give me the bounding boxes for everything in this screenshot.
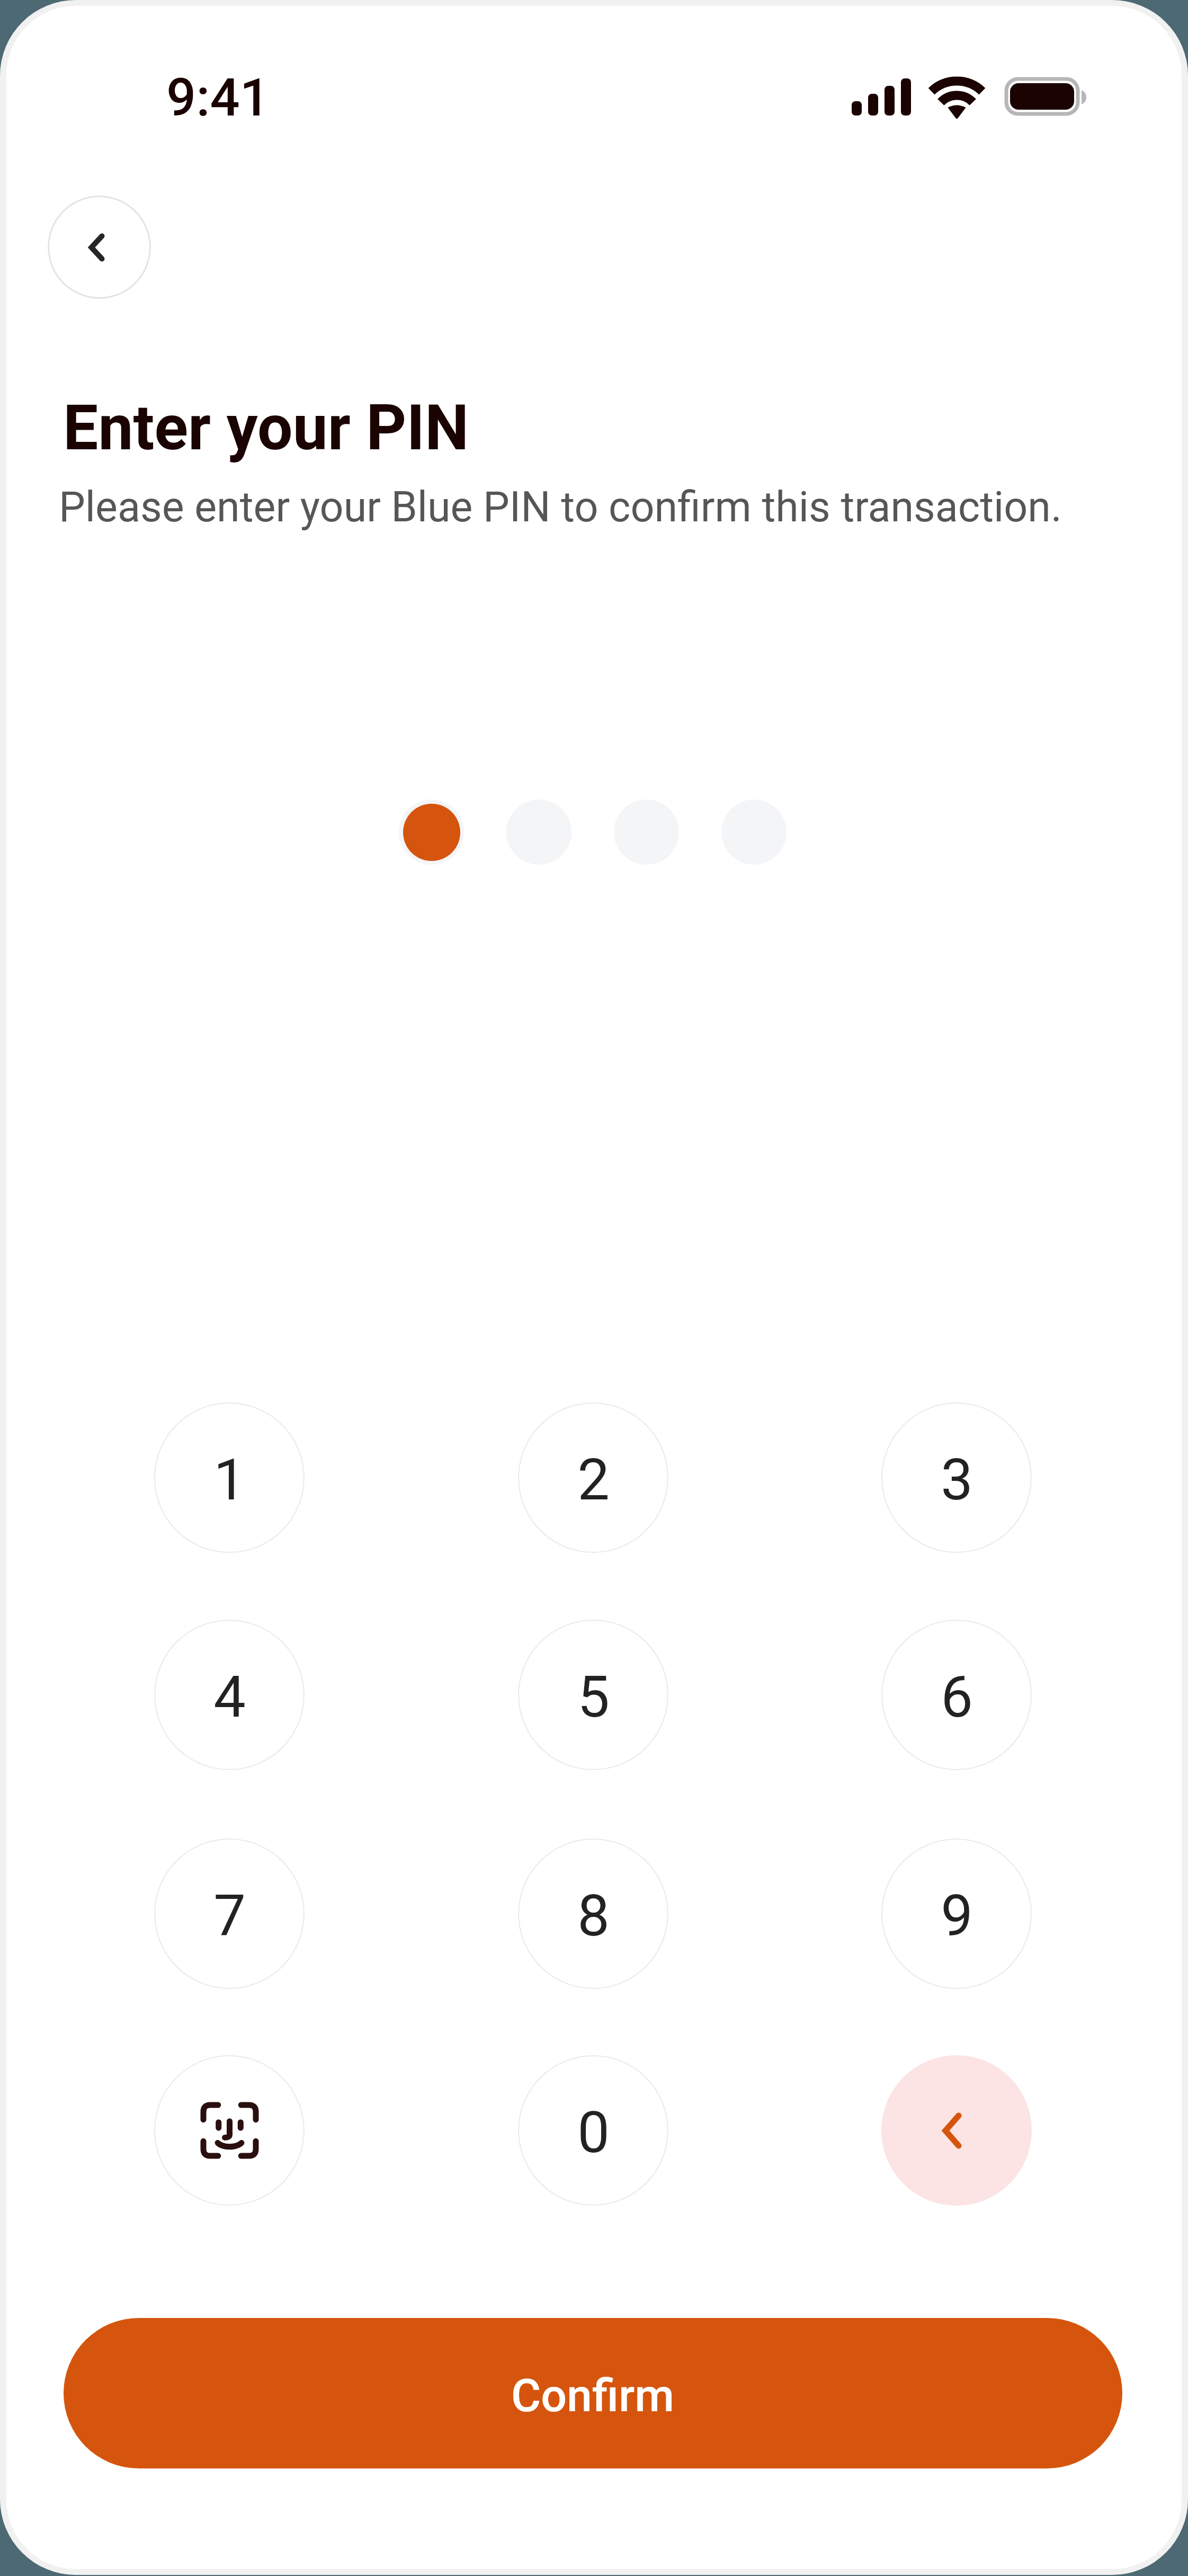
staticText: 8 [577, 1882, 610, 1950]
staticText: 0 [577, 2099, 610, 2166]
staticText: 7 [213, 1882, 246, 1950]
button[interactable]: 2 [518, 1402, 668, 1553]
button[interactable]: 5 [518, 1620, 668, 1770]
staticText: 2 [577, 1446, 610, 1514]
button[interactable]: 6 [881, 1620, 1032, 1770]
staticText: 3 [941, 1446, 973, 1514]
staticText: 9:41 [166, 67, 270, 128]
staticText: Confirm [511, 2369, 675, 2422]
button[interactable]: 9 [881, 1838, 1032, 1989]
button[interactable]: 4 [154, 1620, 305, 1770]
staticText: 4 [213, 1664, 246, 1731]
button[interactable]: Face ID [154, 2055, 305, 2206]
button[interactable]: 8 [518, 1838, 668, 1989]
staticText: 1 [213, 1446, 246, 1514]
staticText: 6 [941, 1664, 973, 1731]
button[interactable]: 1 [154, 1402, 305, 1553]
staticText: Enter your PIN [63, 392, 469, 465]
staticText: 5 [577, 1664, 610, 1731]
staticText: 9 [941, 1882, 973, 1950]
button[interactable]: Confirm [64, 2318, 1122, 2468]
button[interactable]: Back [48, 196, 151, 299]
button[interactable]: 3 [881, 1402, 1032, 1553]
staticText: Please enter your Blue PIN to confirm th… [59, 483, 1062, 532]
button[interactable]: 7 [154, 1838, 305, 1989]
button[interactable]: Delete [881, 2055, 1032, 2206]
button[interactable]: 0 [518, 2055, 668, 2206]
